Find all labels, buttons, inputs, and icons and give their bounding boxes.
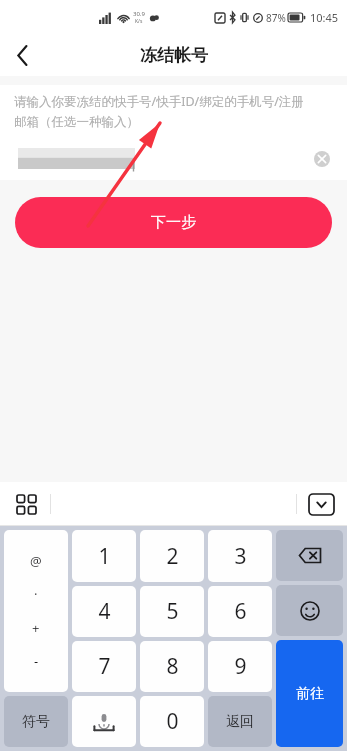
button[interactable]: 6 [208, 586, 272, 637]
button[interactable]: 2 [140, 530, 204, 582]
staticText: - [34, 652, 39, 670]
button[interactable]: Hide keyboard [303, 486, 339, 522]
staticText: 9 [234, 652, 247, 681]
button[interactable]: 返回 [208, 696, 272, 747]
staticText: 10:45 [310, 10, 339, 25]
button[interactable]: @ [4, 530, 68, 692]
button[interactable]: 9 [208, 641, 272, 692]
button[interactable]: 1 [72, 530, 136, 582]
button[interactable]: Back [0, 34, 44, 76]
staticText: 2 [166, 542, 179, 571]
staticText: · [34, 585, 38, 603]
button[interactable]: Emoji [276, 585, 343, 636]
staticText: 4 [98, 597, 111, 626]
staticText: 3 [234, 542, 247, 571]
button[interactable]: 5 [140, 586, 204, 637]
staticText: 1 [98, 542, 111, 571]
button[interactable]: 8 [140, 641, 204, 692]
staticText: @ [30, 552, 42, 570]
button[interactable]: 0 [140, 696, 204, 747]
button[interactable]: 7 [72, 641, 136, 692]
button[interactable]: 前往 [276, 640, 343, 747]
staticText: 前往 [296, 685, 324, 703]
staticText: K/s [135, 18, 143, 25]
staticText: 5 [166, 597, 179, 626]
staticText: 87% [266, 11, 286, 25]
staticText: 请输入你要冻结的快手号/快手ID/绑定的手机号/注册 邮箱（任选一种输入） [14, 93, 304, 130]
staticText: 6 [234, 597, 247, 626]
staticText: 符号 [22, 713, 50, 731]
button[interactable]: 4 [72, 586, 136, 637]
staticText: 30.9 [133, 10, 145, 18]
staticText: 0 [166, 707, 179, 736]
button[interactable]: 下一步 [15, 197, 332, 248]
button[interactable]: 3 [208, 530, 272, 582]
staticText: + [32, 619, 40, 637]
button[interactable]: Keyboard layouts [8, 486, 44, 522]
staticText: 下一步 [151, 213, 196, 232]
staticText: 8 [166, 652, 179, 681]
button[interactable]: 符号 [4, 696, 68, 747]
staticText: 7 [98, 652, 111, 681]
staticText: 冻结帐号 [140, 45, 208, 66]
button[interactable]: Backspace [276, 530, 343, 581]
button[interactable]: Clear [311, 148, 333, 170]
button[interactable]: Space [72, 696, 136, 747]
staticText: 返回 [226, 713, 254, 731]
